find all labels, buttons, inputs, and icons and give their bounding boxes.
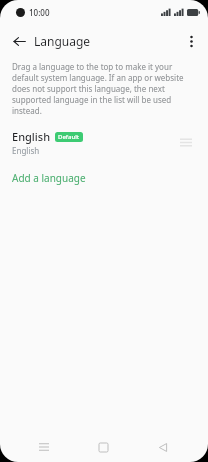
staticText: Language (34, 33, 91, 49)
button[interactable]: More options (178, 28, 204, 54)
staticText: Drag a language to the top to make it yo… (12, 61, 194, 116)
staticText: English (12, 145, 40, 156)
staticText: Add a language (12, 171, 86, 185)
staticText: English (12, 129, 51, 144)
button[interactable]: Reorder (176, 132, 196, 152)
button[interactable]: Back (6, 28, 32, 54)
staticText: Default (58, 133, 80, 141)
button[interactable]: Back (148, 432, 178, 462)
button[interactable]: Recent apps (29, 432, 59, 462)
button[interactable]: Add a language (0, 168, 208, 188)
staticText: 10:00 (29, 7, 50, 18)
button[interactable]: Home (88, 432, 118, 462)
button[interactable]: English (0, 124, 208, 160)
